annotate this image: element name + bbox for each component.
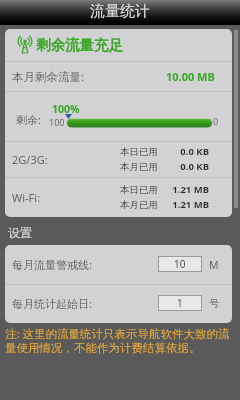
button[interactable]: 每月流量警戒线:: [5, 245, 232, 284]
staticText: 10: [174, 257, 186, 271]
staticText: 本月已用: [120, 161, 158, 173]
staticText: Wi-Fi:: [12, 190, 41, 205]
staticText: 每月统计起始日:: [12, 296, 92, 311]
staticText: 号: [209, 297, 220, 310]
staticText: 本日已用: [120, 184, 158, 196]
staticText: 流量统计: [90, 2, 150, 21]
staticText: 100: [49, 116, 65, 128]
staticText: 设置: [8, 225, 32, 240]
staticText: 注: 这里的流量统计只表示导航软件大致的流量使用情况，不能作为计费结算依据。: [5, 326, 235, 356]
staticText: 本月已用: [120, 199, 158, 211]
staticText: 0.0 KB: [167, 145, 209, 158]
staticText: 本日已用: [120, 146, 158, 158]
staticText: 10.00 MB: [166, 69, 215, 84]
staticText: 2G/3G:: [12, 152, 48, 167]
staticText: 1.21 MB: [167, 198, 209, 211]
staticText: 每月流量警戒线:: [12, 257, 92, 272]
staticText: 本月剩余流量:: [12, 69, 85, 85]
staticText: 0: [213, 115, 219, 127]
staticText: 100%: [52, 102, 80, 116]
staticText: 1.21 MB: [167, 183, 209, 196]
button[interactable]: 每月统计起始日:: [5, 284, 232, 323]
staticText: 1: [177, 296, 183, 310]
staticText: M: [209, 258, 219, 272]
staticText: 剩余:: [16, 112, 41, 127]
staticText: 0.0 KB: [167, 160, 209, 173]
staticText: 剩余流量充足: [36, 36, 123, 54]
